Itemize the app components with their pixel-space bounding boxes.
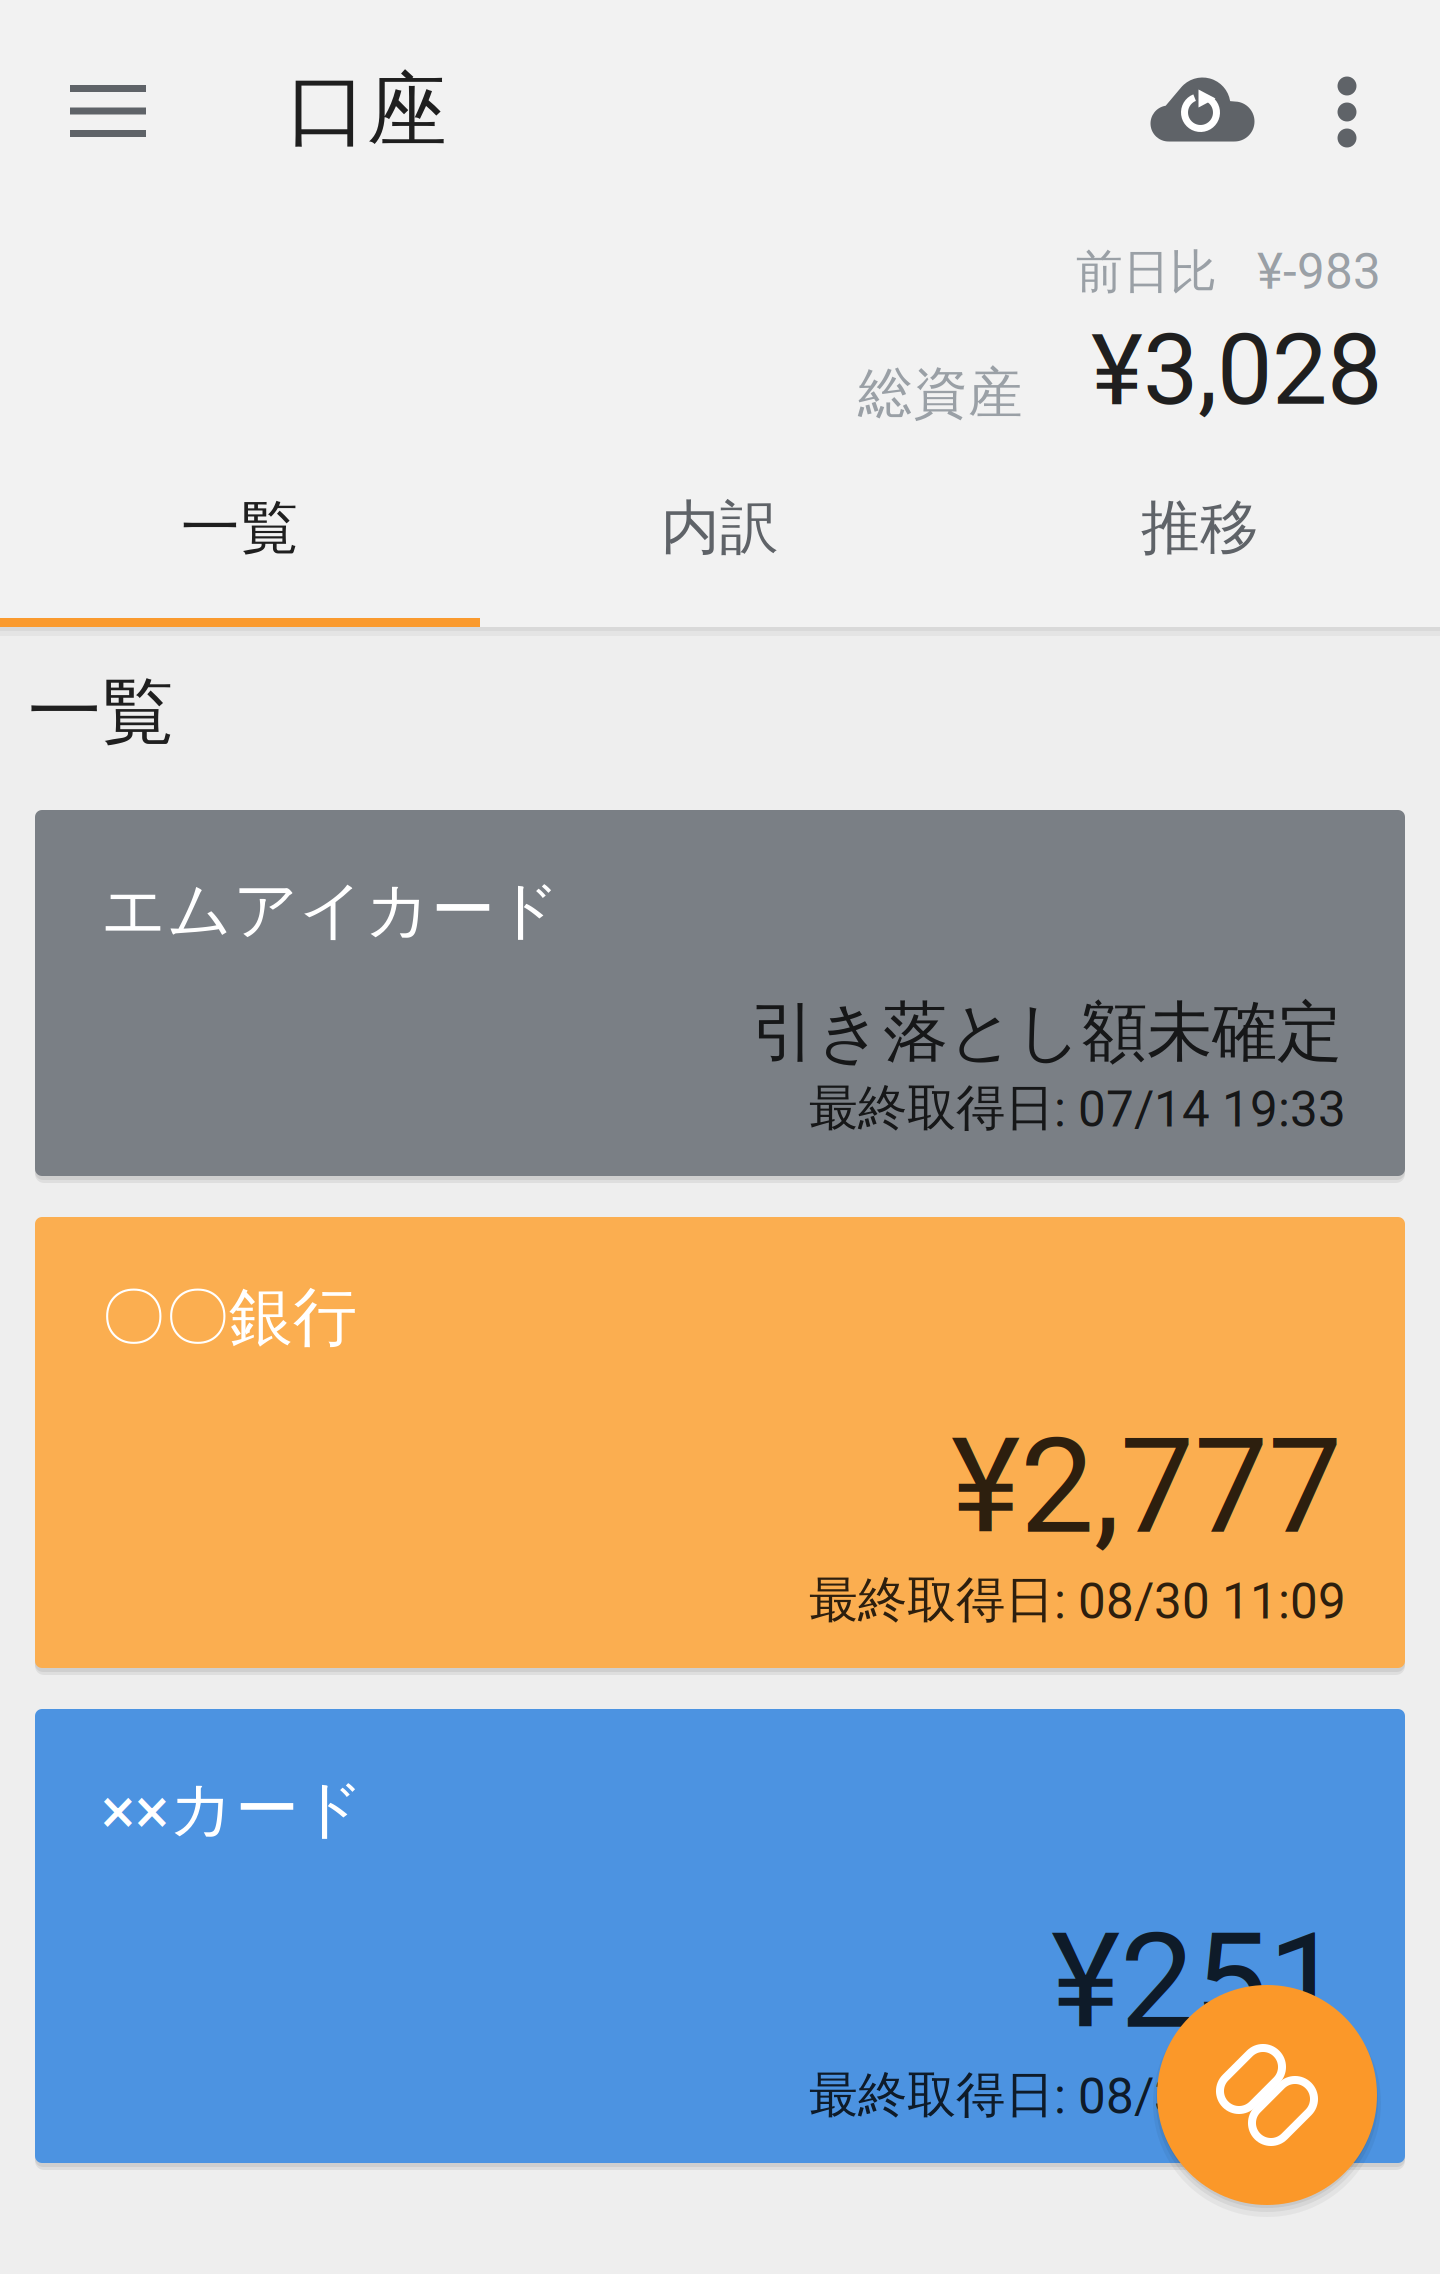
button[interactable]: ××カード <box>35 1711 1405 2165</box>
staticText: 最終取得日: 07/14 19:33 <box>809 1077 1346 1139</box>
staticText: ¥2,777 <box>951 1409 1342 1564</box>
button[interactable]: エムアイカード <box>35 812 1405 1178</box>
staticText: ¥251 <box>1051 1904 1342 2059</box>
staticText: 一覧 <box>28 666 174 758</box>
staticText: 最終取得日: 08/30 11:09 <box>809 1569 1346 1631</box>
staticText: ¥-983 <box>1257 243 1381 301</box>
staticText: 内訳 <box>661 491 779 565</box>
staticText: 一覧 <box>181 491 299 565</box>
staticText: 前日比 <box>1076 243 1217 301</box>
staticText: 最終取得日: 08/30 10:11 <box>809 2064 1346 2126</box>
button[interactable]: Refresh accounts <box>1127 35 1277 185</box>
staticText: ××カード <box>101 1769 365 1850</box>
staticText: 〇〇銀行 <box>101 1277 357 1358</box>
staticText: 引き落とし額未確定 <box>751 991 1342 1073</box>
staticText: ¥3,028 <box>1091 312 1382 428</box>
button[interactable]: 内訳 <box>480 463 960 593</box>
button[interactable]: Link a new account <box>1149 1977 1385 2213</box>
staticText: 総資産 <box>858 359 1023 428</box>
button[interactable]: More options <box>1287 37 1407 187</box>
staticText: 推移 <box>1141 491 1259 565</box>
button[interactable]: Menu <box>28 36 188 186</box>
staticText: エムアイカード <box>101 870 561 951</box>
button[interactable]: 推移 <box>960 463 1440 593</box>
button[interactable]: 一覧 <box>0 463 480 593</box>
button[interactable]: 〇〇銀行 <box>35 1219 1405 1670</box>
staticText: 口座 <box>287 60 447 161</box>
